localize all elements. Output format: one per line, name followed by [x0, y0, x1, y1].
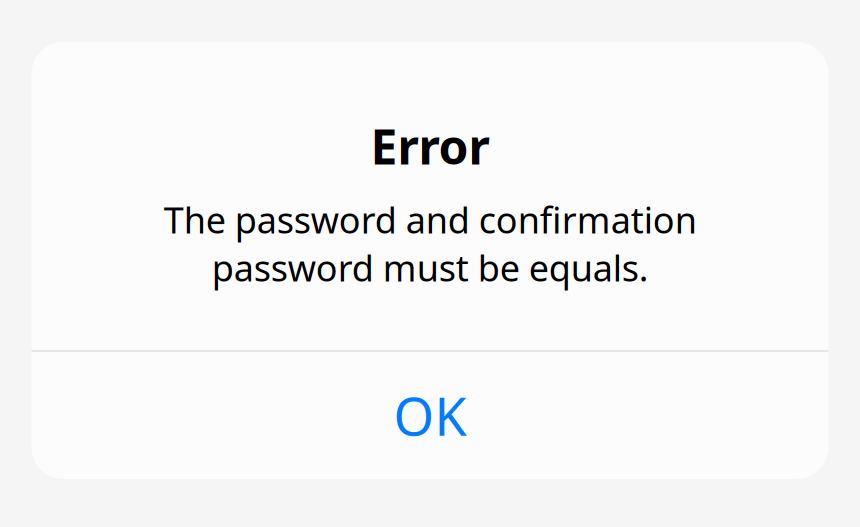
button[interactable]: OK	[31, 352, 828, 479]
staticText: The password and confirmation password m…	[163, 196, 696, 291]
staticText: Error	[370, 114, 489, 178]
staticText: OK	[393, 381, 466, 450]
